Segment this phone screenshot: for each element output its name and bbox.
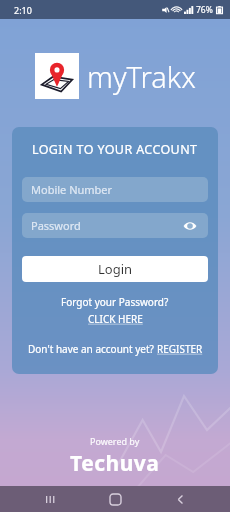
staticText: Mobile Number: [31, 182, 113, 197]
button[interactable]: REGISTER: [157, 342, 203, 356]
button[interactable]: CLICK HERE: [88, 312, 143, 326]
staticText: Password: [31, 218, 81, 233]
button[interactable]: Login: [22, 256, 208, 282]
staticText: Forgot your Password?: [61, 295, 169, 309]
button[interactable]: Home: [100, 486, 130, 512]
button[interactable]: Show password: [181, 217, 199, 235]
button[interactable]: Password: [22, 213, 208, 238]
staticText: 2:10: [14, 4, 32, 16]
staticText: Don't have an account yet?: [28, 342, 157, 356]
staticText: Login: [98, 260, 133, 278]
staticText: 76%: [196, 4, 213, 16]
staticText: REGISTER: [157, 342, 203, 356]
button[interactable]: Back: [165, 486, 195, 512]
button[interactable]: Mobile Number: [22, 177, 208, 202]
button[interactable]: Recent apps: [35, 486, 65, 512]
staticText: myTrakx: [87, 57, 196, 96]
staticText: Techuva: [70, 449, 160, 478]
staticText: Powered by: [90, 435, 140, 447]
staticText: LOGIN TO YOUR ACCOUNT: [32, 141, 198, 158]
staticText: CLICK HERE: [88, 312, 143, 326]
